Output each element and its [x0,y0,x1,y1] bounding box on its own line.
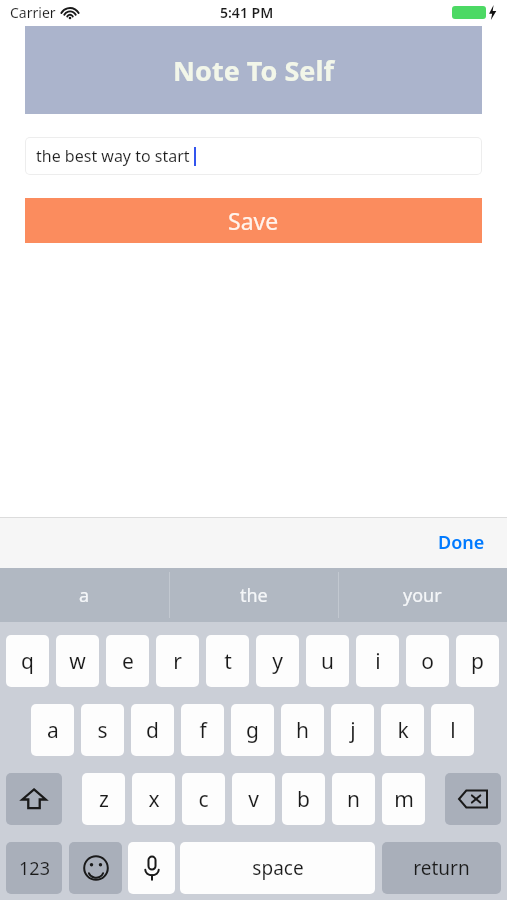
button[interactable]: d [131,704,174,756]
staticText: j [350,716,356,745]
staticText: your [403,583,442,608]
button[interactable]: b [282,773,325,825]
button[interactable]: Backspace [445,773,501,825]
button[interactable]: 123 [6,842,62,894]
button[interactable]: x [132,773,175,825]
button[interactable]: Emoji [69,842,122,894]
button[interactable]: Done [430,524,493,561]
button[interactable]: w [56,635,99,687]
button[interactable]: o [406,635,449,687]
button[interactable]: Save [25,198,482,243]
staticText: z [99,785,109,814]
staticText: k [397,716,409,745]
staticText: u [321,647,334,676]
button[interactable]: your [338,568,507,622]
staticText: q [21,647,34,676]
staticText: d [146,716,159,745]
staticText: Done [438,530,485,555]
staticText: f [199,716,207,745]
button[interactable]: k [381,704,424,756]
button[interactable]: return [382,842,501,894]
staticText: o [421,647,434,676]
staticText: l [450,716,456,745]
staticText: s [97,716,108,745]
staticText: t [224,647,232,676]
staticText: Note To Self [173,52,334,89]
button[interactable]: c [182,773,225,825]
button[interactable]: y [256,635,299,687]
button[interactable]: space [180,842,375,894]
staticText: a [79,583,90,608]
button[interactable]: g [231,704,274,756]
staticText: y [272,647,283,676]
staticText: i [375,647,381,676]
staticText: the [240,583,268,608]
staticText: b [297,785,310,814]
button[interactable]: a [0,568,169,622]
button[interactable]: f [181,704,224,756]
button[interactable]: n [332,773,375,825]
button[interactable]: e [106,635,149,687]
button[interactable]: Shift [6,773,62,825]
staticText: 5:41 PM [220,3,274,22]
button[interactable]: z [82,773,125,825]
button[interactable]: q [6,635,49,687]
staticText: r [173,647,182,676]
staticText: w [69,647,86,676]
staticText: v [248,785,259,814]
staticText: m [394,785,414,814]
button[interactable]: a [31,704,74,756]
button[interactable]: i [356,635,399,687]
staticText: g [246,716,259,745]
staticText: p [471,647,484,676]
button[interactable]: v [232,773,275,825]
staticText: 123 [19,856,50,881]
button[interactable]: Dictation [128,842,175,894]
button[interactable]: l [431,704,474,756]
staticText: a [47,716,59,745]
staticText: space [252,855,304,881]
staticText: h [296,716,309,745]
staticText: e [122,647,134,676]
button[interactable]: h [281,704,324,756]
button[interactable]: r [156,635,199,687]
button[interactable]: the [169,568,338,622]
button[interactable]: s [81,704,124,756]
staticText: return [413,855,470,881]
staticText: the best way to start [36,145,194,167]
button[interactable]: p [456,635,499,687]
staticText: Save [228,205,279,236]
staticText: Carrier [10,3,56,22]
staticText: c [198,785,209,814]
button[interactable]: the best way to start [26,138,481,174]
button[interactable]: j [331,704,374,756]
staticText: n [347,785,360,814]
button[interactable]: m [382,773,425,825]
button[interactable]: t [206,635,249,687]
button[interactable]: u [306,635,349,687]
staticText: x [148,785,160,814]
